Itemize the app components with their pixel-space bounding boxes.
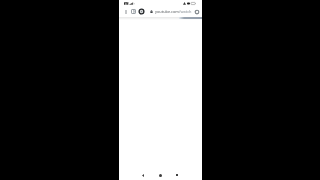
staticText: 9	[133, 10, 135, 14]
button[interactable]: Switch tabs	[129, 7, 138, 16]
button[interactable]: Recent apps	[171, 169, 183, 180]
button[interactable]: Back	[137, 169, 149, 180]
button[interactable]: Home	[154, 169, 166, 180]
staticText: youtube.com	[155, 9, 179, 14]
button[interactable]: Back	[122, 7, 129, 16]
button[interactable]: Account	[137, 7, 145, 16]
button[interactable]: Reload page	[193, 7, 201, 16]
staticText: /watch	[179, 9, 192, 14]
